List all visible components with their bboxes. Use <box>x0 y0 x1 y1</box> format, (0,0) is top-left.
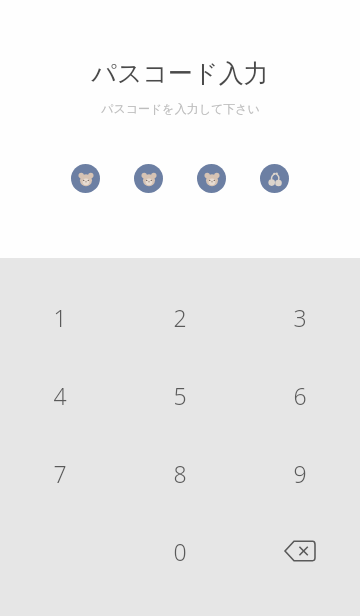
other: Entered digit <box>134 164 163 193</box>
staticText: 0 <box>173 536 187 567</box>
button[interactable]: 0 <box>120 512 240 590</box>
other: Entered digit <box>71 164 100 193</box>
other: Entered digit <box>260 164 289 193</box>
button[interactable]: 4 <box>0 356 120 434</box>
staticText: 9 <box>293 458 307 489</box>
button[interactable]: 5 <box>120 356 240 434</box>
staticText: パスコード入力 <box>91 58 269 89</box>
staticText: 1 <box>53 302 67 333</box>
staticText: パスコードを入力して下さい <box>101 101 260 116</box>
button[interactable]: 2 <box>120 278 240 356</box>
other: Entered digit <box>197 164 226 193</box>
staticText: 5 <box>173 380 187 411</box>
staticText: 8 <box>173 458 187 489</box>
button[interactable]: 9 <box>240 434 360 512</box>
staticText: 3 <box>293 302 307 333</box>
button[interactable]: 8 <box>120 434 240 512</box>
staticText: 7 <box>53 458 67 489</box>
button[interactable]: 1 <box>0 278 120 356</box>
staticText: 2 <box>173 302 187 333</box>
staticText: 6 <box>293 380 307 411</box>
staticText: 4 <box>53 380 67 411</box>
button[interactable]: Delete <box>240 512 360 590</box>
button[interactable]: 7 <box>0 434 120 512</box>
button[interactable]: 3 <box>240 278 360 356</box>
button[interactable]: 6 <box>240 356 360 434</box>
